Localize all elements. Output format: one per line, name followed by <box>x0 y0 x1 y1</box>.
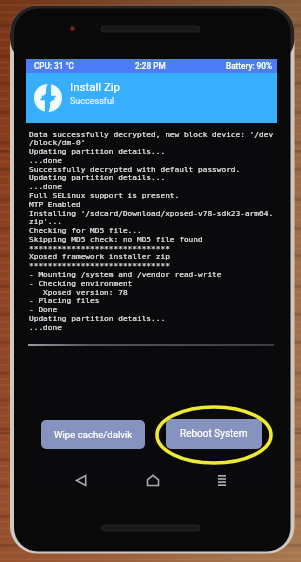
staticText: Checking for MD5 file... <box>29 226 142 235</box>
staticText: Installing '/sdcard/Download/xposed-v78-… <box>29 209 274 218</box>
staticText: ...done <box>29 182 62 191</box>
button[interactable]: Back <box>73 472 89 488</box>
staticText: - Done <box>29 305 58 314</box>
staticText: Reboot System <box>180 428 248 440</box>
button[interactable]: Recent apps <box>214 472 230 488</box>
staticText: Full SELinux support is present. <box>29 191 180 200</box>
staticText: - Mounting /system and /vendor read-writ… <box>29 270 222 279</box>
staticText: /block/dm-0' <box>29 138 86 147</box>
staticText: MTP Enabled <box>29 200 81 209</box>
staticText: CPU: 31 °C <box>34 61 74 71</box>
staticText: ...done <box>29 323 62 332</box>
button[interactable]: Wipe cache/dalvik <box>41 420 145 449</box>
staticText: Updating partition details... <box>29 314 166 323</box>
staticText: Successful <box>70 96 115 107</box>
staticText: Data successfully decrypted, new block d… <box>29 130 274 139</box>
staticText: Wipe cache/dalvik <box>54 429 133 440</box>
staticText: Battery: 90% <box>226 61 272 71</box>
staticText: - Checking environment <box>29 279 133 288</box>
staticText: Updating partition details... <box>29 173 166 182</box>
staticText: ****************************** <box>29 261 170 270</box>
staticText: 2:28 PM <box>135 61 166 71</box>
staticText: ****************************** <box>29 244 170 253</box>
staticText: - Placing files <box>29 296 100 305</box>
button[interactable]: Home <box>145 472 161 488</box>
button[interactable]: Reboot System <box>166 419 262 449</box>
staticText: Successfully decrypted with default pass… <box>29 165 241 174</box>
staticText: Install Zip <box>70 80 121 93</box>
staticText: Skipping MD5 check: no MD5 file found <box>29 235 203 244</box>
staticText: zip'... <box>29 217 62 226</box>
staticText: Xposed framework installer zip <box>29 252 170 261</box>
staticText: Xposed version: 78 <box>29 288 128 297</box>
staticText: Updating partition details... <box>29 147 166 156</box>
staticText: ...done <box>29 156 62 165</box>
